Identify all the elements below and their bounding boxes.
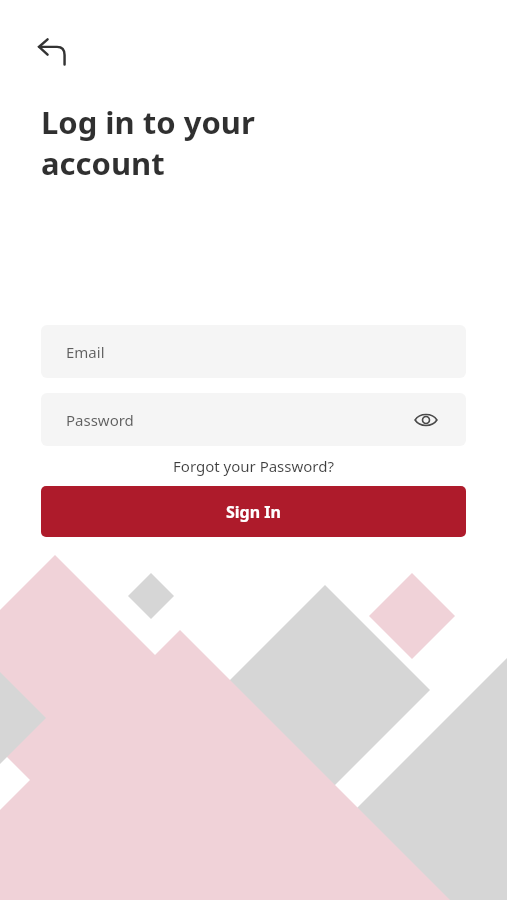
button[interactable]: Forgot your Password? <box>41 456 466 476</box>
button[interactable]: Password <box>41 393 466 446</box>
staticText: Forgot your Password? <box>173 456 334 476</box>
staticText: Sign In <box>226 501 281 523</box>
staticText: Password <box>66 410 134 430</box>
button[interactable]: Email <box>41 325 466 378</box>
button[interactable]: Show password <box>411 405 441 435</box>
staticText: Log in to your account <box>41 101 255 184</box>
button[interactable]: Sign In <box>41 486 466 537</box>
staticText: Email <box>66 342 105 362</box>
button[interactable]: Back <box>30 30 76 76</box>
